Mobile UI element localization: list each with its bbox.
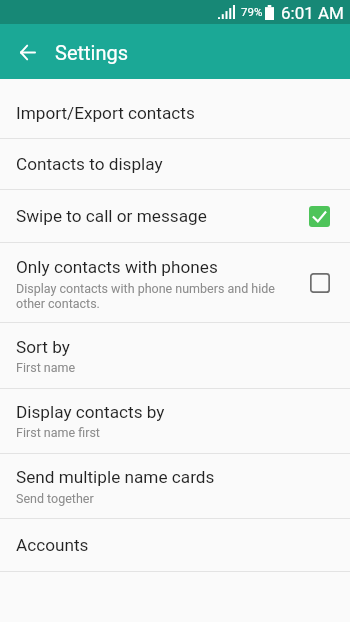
- staticText: Settings: [55, 41, 129, 64]
- staticText: Contacts to display: [16, 154, 163, 174]
- button[interactable]: Import/Export contacts: [0, 80, 350, 138]
- staticText: Accounts: [16, 535, 89, 555]
- staticText: Sort by: [16, 337, 70, 357]
- button[interactable]: Only contacts with phones checkbox: [310, 273, 330, 293]
- staticText: 79%: [241, 5, 263, 18]
- button[interactable]: Back: [8, 32, 48, 72]
- button[interactable]: Swipe to call or message checkbox: [309, 206, 330, 227]
- staticText: Display contacts by: [16, 402, 165, 422]
- button[interactable]: Swipe to call or message: [0, 189, 350, 242]
- button[interactable]: Send multiple name cards: [0, 453, 350, 518]
- staticText: Display contacts with phone numbers and …: [16, 281, 275, 311]
- staticText: Only contacts with phones: [16, 257, 218, 277]
- staticText: Send together: [16, 491, 94, 506]
- button[interactable]: Only contacts with phones: [0, 242, 350, 322]
- staticText: Import/Export contacts: [16, 103, 195, 123]
- staticText: First name: [16, 360, 76, 375]
- staticText: Swipe to call or message: [16, 206, 207, 226]
- button[interactable]: Accounts: [0, 518, 350, 571]
- staticText: Send multiple name cards: [16, 467, 215, 487]
- button[interactable]: Display contacts by: [0, 388, 350, 453]
- button[interactable]: Contacts to display: [0, 138, 350, 189]
- staticText: First name first: [16, 425, 100, 440]
- button[interactable]: Sort by: [0, 322, 350, 388]
- staticText: 6:01 AM: [281, 3, 344, 23]
